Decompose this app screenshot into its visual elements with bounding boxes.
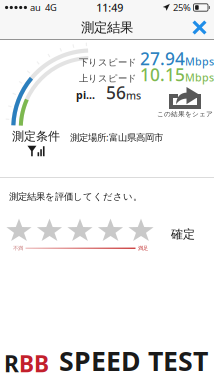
staticText: Mbps xyxy=(185,70,214,85)
staticText: 確定 xyxy=(171,227,195,242)
staticText: 測定条件 xyxy=(12,129,60,144)
staticText: 25% xyxy=(173,1,191,14)
button[interactable]: 2 stars xyxy=(35,218,63,241)
staticText: 上りスピード xyxy=(79,73,137,84)
staticText: pi... xyxy=(76,88,95,102)
staticText: 27.94 xyxy=(140,47,185,70)
staticText: 不満 xyxy=(13,245,23,252)
staticText: R xyxy=(4,348,19,378)
button[interactable]: Close xyxy=(185,15,214,40)
staticText: Mbps xyxy=(185,54,214,69)
staticText: 測定場所:富山県高岡市 xyxy=(70,131,163,143)
staticText: 測定結果を評価してください。 xyxy=(9,191,142,202)
staticText: 満足 xyxy=(138,245,148,252)
staticText: この結果をシェア xyxy=(157,110,213,118)
staticText: 下りスピード xyxy=(79,57,137,68)
staticText: 56 xyxy=(106,81,126,104)
staticText: au xyxy=(30,1,41,14)
button[interactable]: 5 stars xyxy=(127,218,155,241)
staticText: ms xyxy=(126,88,141,103)
staticText: 10.15 xyxy=(140,63,185,86)
staticText: BB xyxy=(19,348,49,378)
staticText: 測定結果 xyxy=(81,19,133,36)
staticText: SPEED TEST xyxy=(59,343,208,378)
staticText: 4G xyxy=(45,1,57,14)
button[interactable]: 4 stars xyxy=(96,218,124,241)
button[interactable]: 3 stars xyxy=(66,218,94,241)
staticText: 11:49 xyxy=(96,0,123,15)
button[interactable]: 確定 xyxy=(167,223,199,246)
button[interactable]: 1 star xyxy=(5,218,33,241)
button[interactable]: この結果をシェア xyxy=(157,87,213,118)
